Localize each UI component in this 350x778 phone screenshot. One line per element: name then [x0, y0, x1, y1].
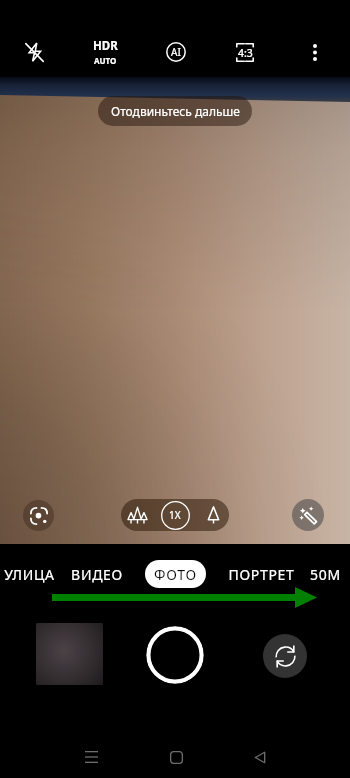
button[interactable]: Flash off [17, 35, 51, 69]
button[interactable]: Ultra wide [121, 499, 153, 531]
button[interactable]: 1X [159, 499, 191, 531]
button[interactable]: ВИДЕО [54, 560, 140, 588]
staticText: ФОТО [154, 565, 197, 584]
button[interactable]: Gallery [36, 623, 103, 685]
button[interactable]: ФОТО [145, 560, 206, 588]
staticText: ПОРТРЕТ [228, 565, 295, 584]
button[interactable]: Lens scan [23, 500, 54, 531]
staticText: 4:3 [238, 46, 253, 60]
button[interactable]: Switch camera [263, 634, 307, 678]
button[interactable]: Back [240, 737, 280, 777]
staticText: ВИДЕО [71, 565, 123, 584]
button[interactable]: More options [298, 35, 332, 69]
button[interactable]: УЛИЦА [0, 560, 72, 588]
staticText: AI [171, 45, 181, 59]
staticText: 50M [310, 565, 341, 584]
button[interactable]: HDR [85, 32, 125, 72]
button[interactable]: Recents [71, 737, 111, 777]
staticText: HDR [93, 38, 118, 54]
staticText: AUTO [94, 55, 117, 66]
button[interactable]: ПОРТРЕТ [218, 560, 304, 588]
button[interactable]: Shutter [146, 626, 204, 684]
button[interactable]: Home [156, 737, 196, 777]
button[interactable]: 50M [282, 560, 350, 588]
button[interactable]: Filters [292, 499, 324, 531]
button[interactable]: AI [159, 35, 193, 69]
staticText: Отодвиньтесь дальше [111, 103, 240, 119]
staticText: УЛИЦА [4, 565, 55, 584]
staticText: 1X [169, 508, 181, 522]
button[interactable]: 4:3 [228, 35, 262, 69]
button[interactable]: Zoom 2x [197, 499, 229, 531]
